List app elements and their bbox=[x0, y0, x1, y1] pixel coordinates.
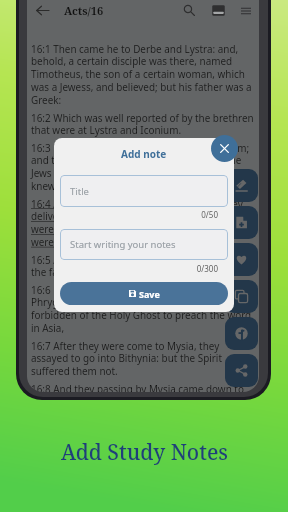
staticText: 16:6 Now when they had gone throughout P… bbox=[31, 283, 257, 335]
staticText: Save bbox=[139, 288, 160, 300]
staticText: 16:7 After they were come to Mysia, they… bbox=[31, 339, 257, 378]
button[interactable]: Facebook bbox=[225, 317, 258, 350]
button[interactable]: Title bbox=[60, 175, 228, 207]
button[interactable]: Add note bbox=[225, 206, 258, 239]
staticText: 16:3 Him would Paul have to go forth wit… bbox=[31, 141, 257, 193]
staticText: Acts/16 bbox=[64, 3, 104, 18]
staticText: Add Study Notes bbox=[61, 438, 228, 467]
button[interactable]: Save bbox=[60, 282, 228, 305]
staticText: 0/300 bbox=[60, 263, 218, 274]
staticText: 16:1 Then came he to Derbe and Lystra: a… bbox=[31, 42, 257, 107]
staticText: 16:4 And as they went through the cities… bbox=[31, 197, 257, 249]
staticText: Add note bbox=[121, 147, 167, 161]
button[interactable]: Start writing your notes bbox=[60, 229, 228, 260]
staticText: 0/50 bbox=[60, 209, 218, 220]
button[interactable]: Favorite bbox=[225, 243, 258, 276]
button[interactable]: Close bbox=[211, 135, 238, 162]
button[interactable]: Books bbox=[205, 0, 232, 24]
staticText: 16:5 And so were the churches establishe… bbox=[31, 253, 257, 279]
button[interactable]: Copy bbox=[225, 280, 258, 313]
button[interactable]: Back bbox=[27, 0, 57, 25]
staticText: Title bbox=[70, 185, 89, 198]
button[interactable]: Menu bbox=[232, 0, 259, 24]
staticText: 16:8 And they passing by Mysia came down… bbox=[31, 382, 257, 392]
staticText: Start writing your notes bbox=[70, 238, 176, 251]
button[interactable]: Search bbox=[174, 0, 205, 26]
staticText: 16:2 Which was well reported of by the b… bbox=[31, 111, 257, 137]
button[interactable]: Edit bbox=[225, 169, 258, 202]
button[interactable]: Share bbox=[225, 354, 258, 387]
